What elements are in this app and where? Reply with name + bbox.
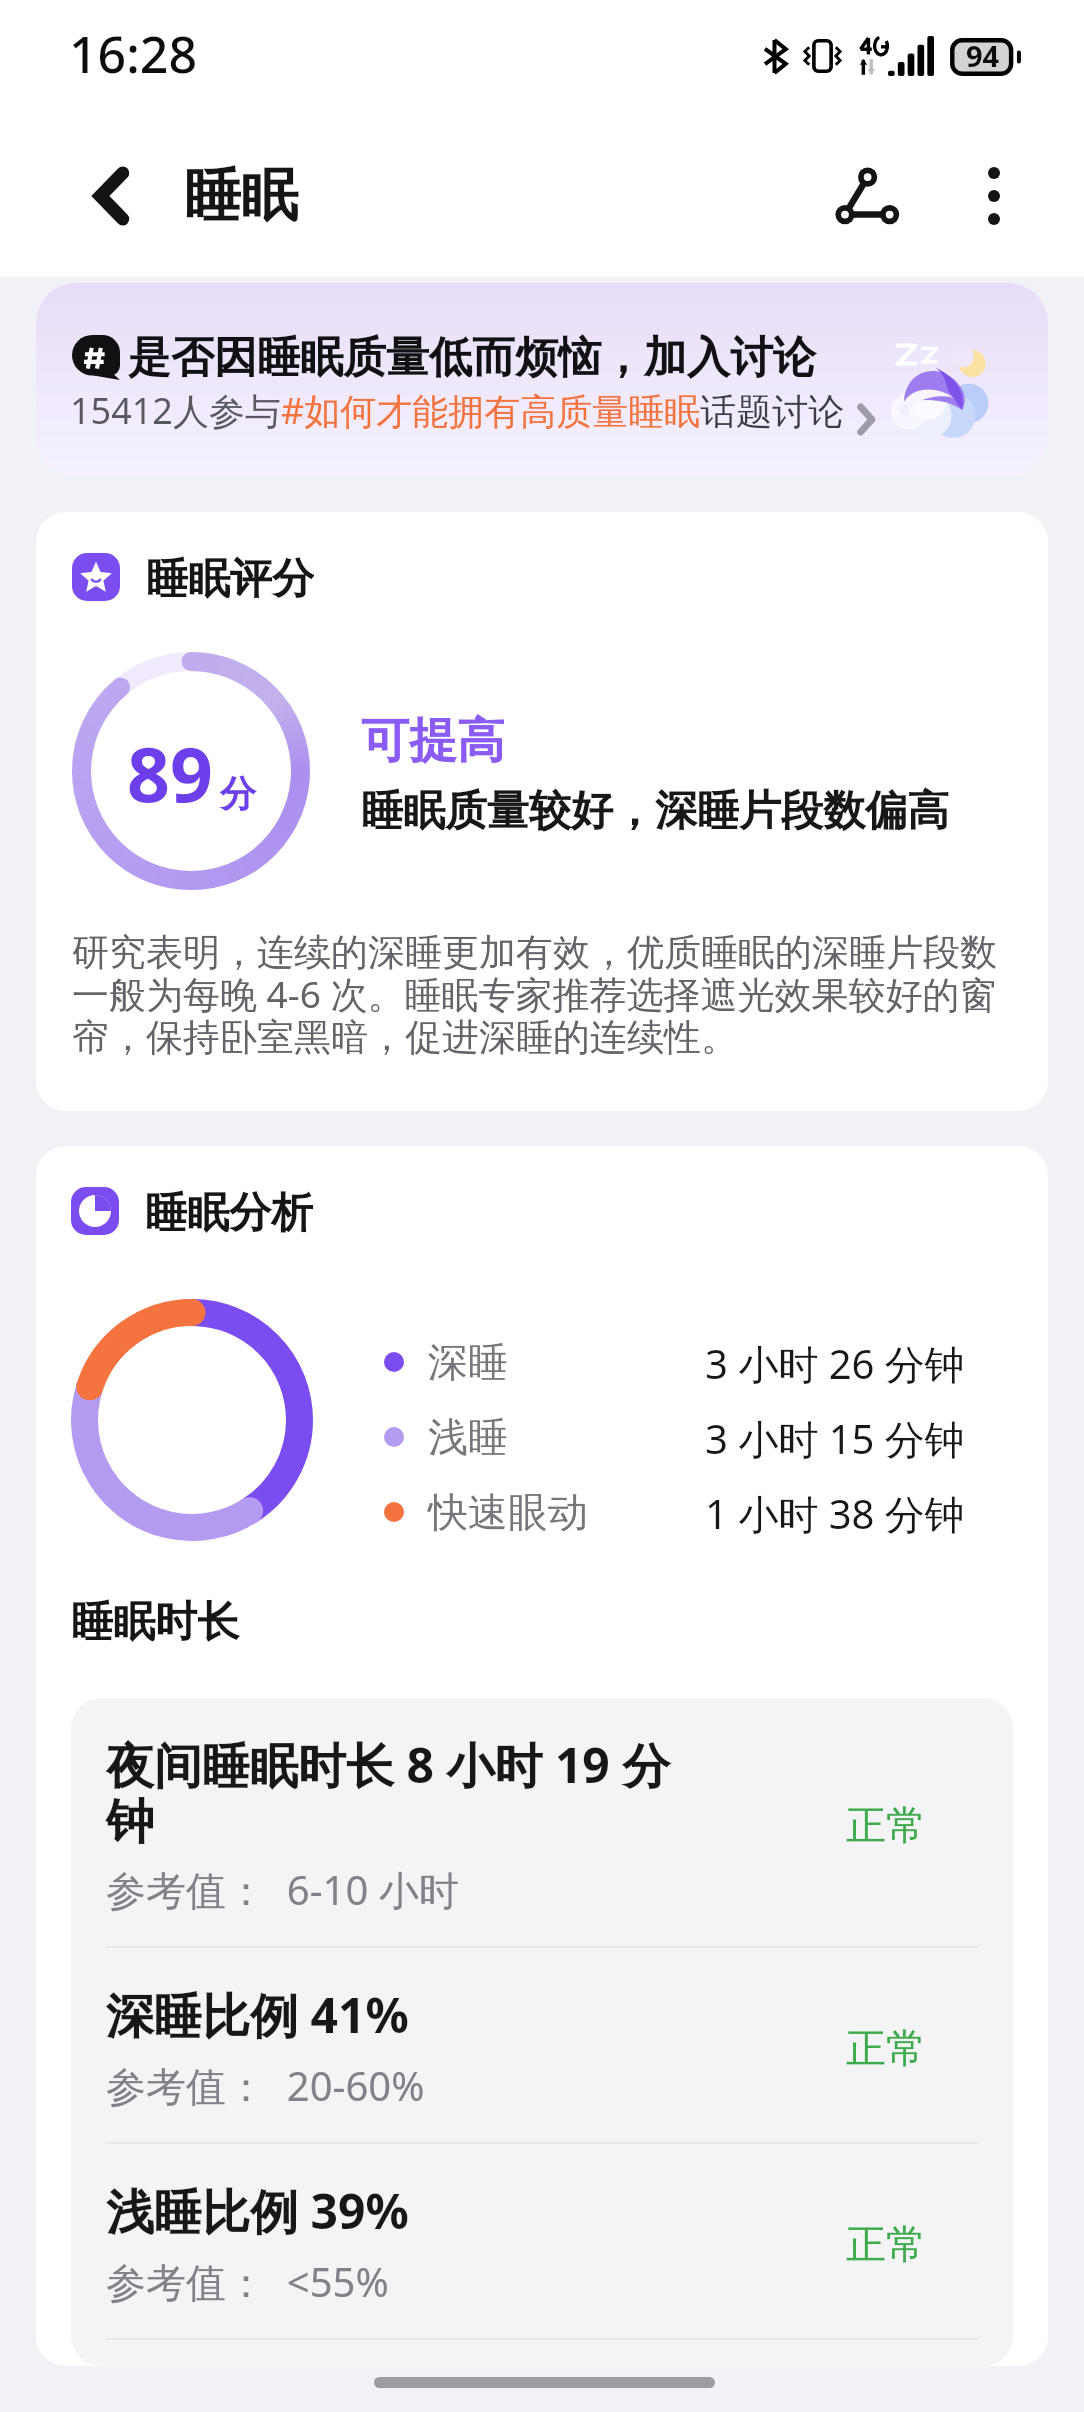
staticText: 3 小时 15 分钟	[705, 1411, 965, 1463]
staticText: 16:28	[69, 20, 197, 88]
staticText: 分	[220, 771, 256, 816]
button[interactable]: More options	[944, 146, 1044, 246]
staticText: 3 小时 26 分钟	[705, 1336, 965, 1388]
staticText: 睡眠	[184, 160, 298, 232]
button[interactable]: Back	[57, 142, 165, 250]
staticText: 睡眠时长	[71, 1596, 239, 1649]
staticText: 研究表明，连续的深睡更加有效，优质睡眠的深睡片段数一般为每晚 4-6 次。睡眠专…	[72, 929, 1012, 1061]
staticText: 1 小时 38 分钟	[705, 1486, 965, 1538]
button[interactable]: 深睡比例 41%	[106, 1948, 978, 2142]
staticText: 15412人参与#如何才能拥有高质量睡眠话题讨论	[70, 386, 845, 435]
staticText: 正常	[806, 2023, 966, 2073]
staticText: 正常	[806, 2219, 966, 2269]
button[interactable]: 是否因睡眠质量低而烦恼，加入讨论	[36, 283, 1048, 476]
staticText: 参考值： <55%	[106, 2254, 389, 2309]
button[interactable]: Share	[812, 141, 922, 251]
staticText: 睡眠评分	[146, 553, 314, 601]
staticText: 89	[127, 722, 213, 824]
staticText: 正常	[806, 1800, 966, 1850]
staticText: 快速眼动	[428, 1487, 705, 1537]
staticText: 睡眠质量较好，深睡片段数偏高	[361, 785, 949, 838]
button[interactable]: 夜间睡眠时长 8 小时 19 分钟	[106, 1698, 978, 1946]
staticText: 浅睡比例 39%	[106, 2178, 409, 2244]
staticText: 94	[966, 36, 1000, 75]
staticText: 可提高	[361, 711, 505, 771]
staticText: 参考值： 6-10 小时	[106, 1862, 459, 1917]
staticText: 深睡比例 41%	[106, 1982, 409, 2048]
staticText: 参考值： 20-60%	[106, 2058, 425, 2113]
staticText: 是否因睡眠质量低而烦恼，加入讨论	[128, 331, 816, 385]
staticText: 睡眠分析	[145, 1187, 313, 1235]
staticText: 浅睡	[428, 1412, 705, 1462]
staticText: 深睡	[428, 1337, 705, 1387]
staticText: 夜间睡眠时长 8 小时 19 分钟	[106, 1732, 696, 1852]
button[interactable]: 浅睡比例 39%	[106, 2144, 978, 2338]
